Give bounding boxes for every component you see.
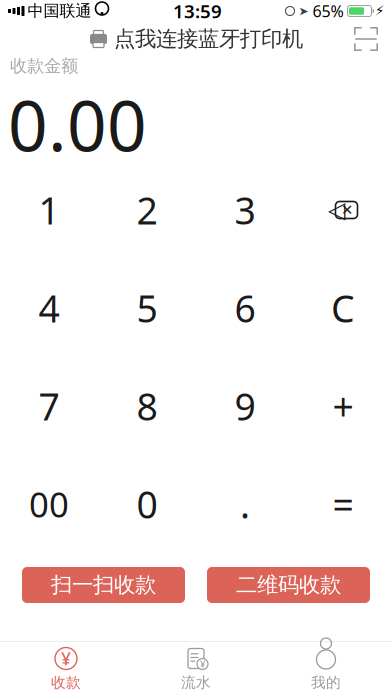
staticText: ➤	[298, 4, 308, 18]
staticText: 3	[234, 185, 255, 235]
staticText: 13:59	[173, 0, 222, 23]
staticText: 0.00	[8, 79, 147, 171]
button[interactable]: 0	[98, 455, 196, 553]
button[interactable]: 1	[0, 161, 98, 259]
staticText: ¥	[200, 658, 205, 670]
staticText: 收款	[51, 673, 81, 691]
staticText: 扫一扫收款	[51, 572, 156, 598]
staticText: 6	[234, 283, 255, 333]
button[interactable]: ¥	[1, 644, 131, 694]
button[interactable]: 二维码收款	[207, 567, 370, 603]
staticText: 二维码收款	[236, 572, 341, 598]
button[interactable]: ¥	[131, 644, 261, 694]
button[interactable]: +	[294, 357, 392, 455]
button[interactable]: .	[196, 455, 294, 553]
staticText: .	[240, 479, 250, 529]
staticText: +	[332, 381, 353, 431]
button[interactable]: 3	[196, 161, 294, 259]
staticText: 5	[136, 283, 157, 333]
staticText: 9	[234, 381, 255, 431]
staticText: 1	[38, 185, 59, 235]
button[interactable]: C	[294, 259, 392, 357]
staticText: 流水	[181, 673, 211, 691]
button[interactable]: 4	[0, 259, 98, 357]
staticText: ⚡︎	[375, 3, 384, 18]
staticText: C	[331, 283, 355, 333]
staticText: 00	[29, 481, 69, 527]
button[interactable]: 我的	[261, 644, 391, 694]
button[interactable]: 00	[0, 455, 98, 553]
staticText: 8	[136, 381, 157, 431]
button[interactable]: 点我连接蓝牙打印机	[79, 21, 313, 57]
staticText: 4	[38, 283, 59, 333]
button[interactable]: 5	[98, 259, 196, 357]
button[interactable]: 扫一扫收款	[22, 567, 185, 603]
button[interactable]: 8	[98, 357, 196, 455]
button[interactable]: 9	[196, 357, 294, 455]
button[interactable]: 扫描	[340, 21, 392, 57]
staticText: 2	[136, 185, 157, 235]
staticText: 收款金额	[10, 55, 78, 77]
button[interactable]: 2	[98, 161, 196, 259]
button[interactable]: 6	[196, 259, 294, 357]
staticText: 7	[38, 381, 59, 431]
staticText: 中国联通	[27, 1, 91, 21]
button[interactable]: 7	[0, 357, 98, 455]
button[interactable]: ◁	[294, 161, 392, 259]
staticText: =	[332, 479, 353, 529]
staticText: ¥	[61, 647, 71, 670]
staticText: 65%	[312, 0, 343, 22]
staticText: 我的	[311, 673, 341, 691]
staticText: ◁	[328, 197, 345, 223]
staticText: 0	[136, 479, 157, 529]
staticText: 点我连接蓝牙打印机	[114, 26, 303, 52]
button[interactable]: =	[294, 455, 392, 553]
staticText: ✕	[341, 202, 353, 218]
